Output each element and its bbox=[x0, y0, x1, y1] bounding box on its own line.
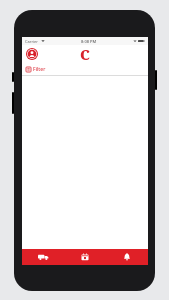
button[interactable]: Deliveries bbox=[22, 249, 64, 265]
button[interactable]: Profile bbox=[25, 47, 39, 61]
button[interactable]: Alerts bbox=[106, 249, 148, 265]
button[interactable]: Filter bbox=[22, 63, 148, 75]
staticText: 8:08 PM bbox=[81, 39, 97, 44]
staticText: Filter bbox=[33, 66, 46, 73]
staticText: C bbox=[80, 45, 90, 63]
button[interactable]: Calendar bbox=[64, 249, 106, 265]
staticText: Carrier bbox=[25, 39, 39, 44]
